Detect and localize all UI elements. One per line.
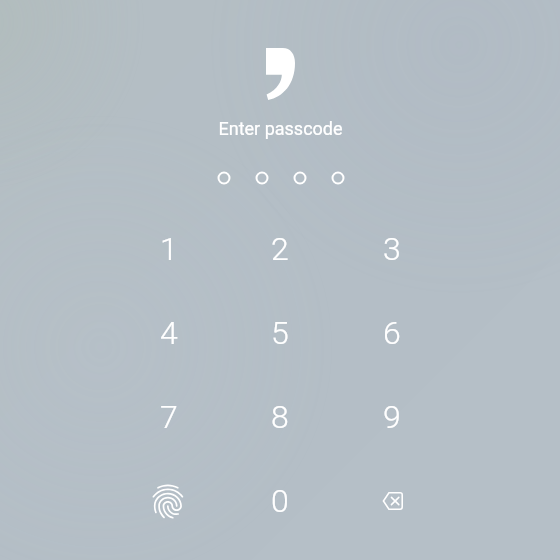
button[interactable]: Unlock with fingerprint (115, 460, 223, 542)
button[interactable]: Delete (338, 460, 446, 542)
button[interactable]: 6 (338, 292, 446, 374)
staticText: 2 (271, 230, 289, 268)
button[interactable]: 9 (338, 376, 446, 458)
button[interactable]: 2 (226, 208, 334, 290)
button[interactable]: 5 (226, 292, 334, 374)
button[interactable]: 0 (226, 460, 334, 542)
staticText: 4 (160, 314, 178, 352)
button[interactable]: 1 (115, 208, 223, 290)
staticText: 9 (383, 398, 401, 436)
staticText: 0 (271, 482, 289, 520)
button[interactable]: 7 (115, 376, 223, 458)
button[interactable]: 8 (226, 376, 334, 458)
button[interactable]: 4 (115, 292, 223, 374)
staticText: 8 (271, 398, 289, 436)
staticText: 6 (383, 314, 401, 352)
staticText: 7 (160, 398, 178, 436)
staticText: 3 (383, 230, 401, 268)
staticText: Enter passcode (218, 118, 343, 139)
staticText: 1 (160, 230, 178, 268)
staticText: 5 (271, 314, 289, 352)
button[interactable]: 3 (338, 208, 446, 290)
